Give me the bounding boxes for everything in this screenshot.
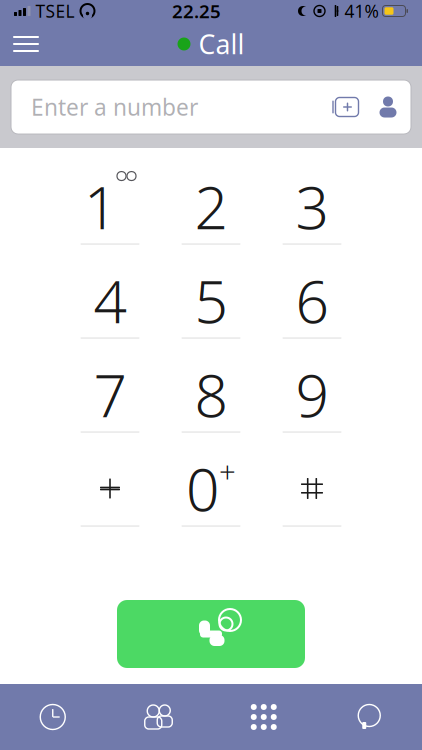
button[interactable] [261, 446, 362, 540]
button[interactable]: Keypad [211, 684, 316, 750]
button[interactable]: Call [117, 600, 305, 668]
button[interactable]: Messages [316, 684, 422, 750]
button[interactable]: 8 [160, 352, 261, 446]
button[interactable]: Menu [0, 22, 52, 66]
button[interactable]: Contacts [105, 684, 211, 750]
staticText: 1 [84, 167, 117, 245]
button[interactable]: 2 [160, 164, 261, 258]
button[interactable]: 9 [261, 352, 362, 446]
staticText: Call [198, 26, 244, 62]
staticText: TSEL [35, 0, 74, 22]
button[interactable]: 6 [261, 258, 362, 352]
button[interactable]: 0 [160, 446, 261, 540]
button[interactable]: 4 [59, 258, 160, 352]
staticText: 41% [344, 0, 378, 22]
staticText: 2 [194, 167, 227, 245]
button[interactable]: 7 [59, 352, 160, 446]
staticText: 9 [295, 355, 328, 433]
button[interactable]: 1 [59, 164, 160, 258]
staticText: 0 [186, 449, 219, 527]
button[interactable]: 3 [261, 164, 362, 258]
staticText: Enter a number [31, 92, 198, 122]
button[interactable]: Delete [321, 82, 365, 132]
staticText: 6 [295, 261, 328, 339]
button[interactable]: 5 [160, 258, 261, 352]
staticText: 22.25 [172, 0, 221, 23]
button[interactable] [59, 446, 160, 540]
staticText: 8 [194, 355, 227, 433]
button[interactable]: Recents [0, 684, 105, 750]
staticText: + [219, 451, 236, 490]
staticText: 4 [93, 261, 126, 339]
staticText: 3 [295, 167, 328, 245]
staticText: 5 [194, 261, 227, 339]
staticText: 7 [93, 355, 126, 433]
button[interactable]: Contacts [365, 82, 411, 132]
